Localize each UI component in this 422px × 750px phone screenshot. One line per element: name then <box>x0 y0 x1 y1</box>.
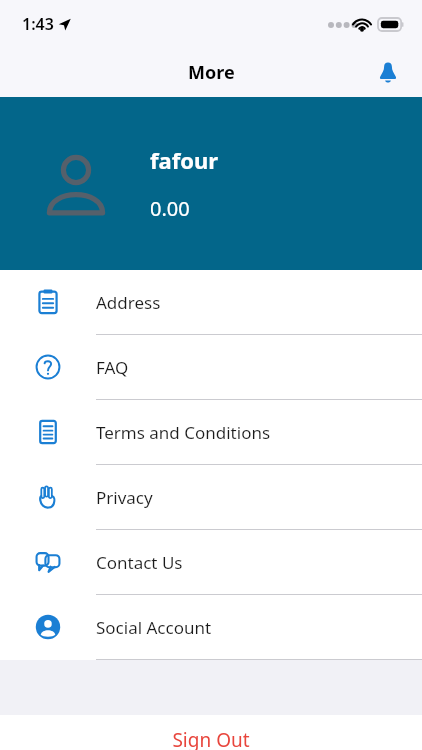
staticText: Address <box>96 291 161 314</box>
staticText: Sign Out <box>172 727 250 750</box>
staticText: FAQ <box>96 356 129 379</box>
button[interactable]: Sign Out <box>0 715 422 750</box>
staticText: 0.00 <box>150 195 190 222</box>
button[interactable]: FAQ <box>0 335 422 400</box>
staticText: Privacy <box>96 486 153 509</box>
staticText: More <box>188 60 235 85</box>
staticText: Social Account <box>96 616 212 639</box>
staticText: 1:43 <box>22 13 54 35</box>
button[interactable]: Terms and Conditions <box>0 400 422 465</box>
staticText: Terms and Conditions <box>96 421 271 444</box>
button[interactable]: Contact Us <box>0 530 422 595</box>
button[interactable]: Social Account <box>0 595 422 660</box>
staticText: fafour <box>150 145 219 175</box>
staticText: Contact Us <box>96 551 183 574</box>
button[interactable]: Privacy <box>0 465 422 530</box>
button[interactable]: Notifications <box>368 53 408 93</box>
button[interactable]: Address <box>0 270 422 335</box>
